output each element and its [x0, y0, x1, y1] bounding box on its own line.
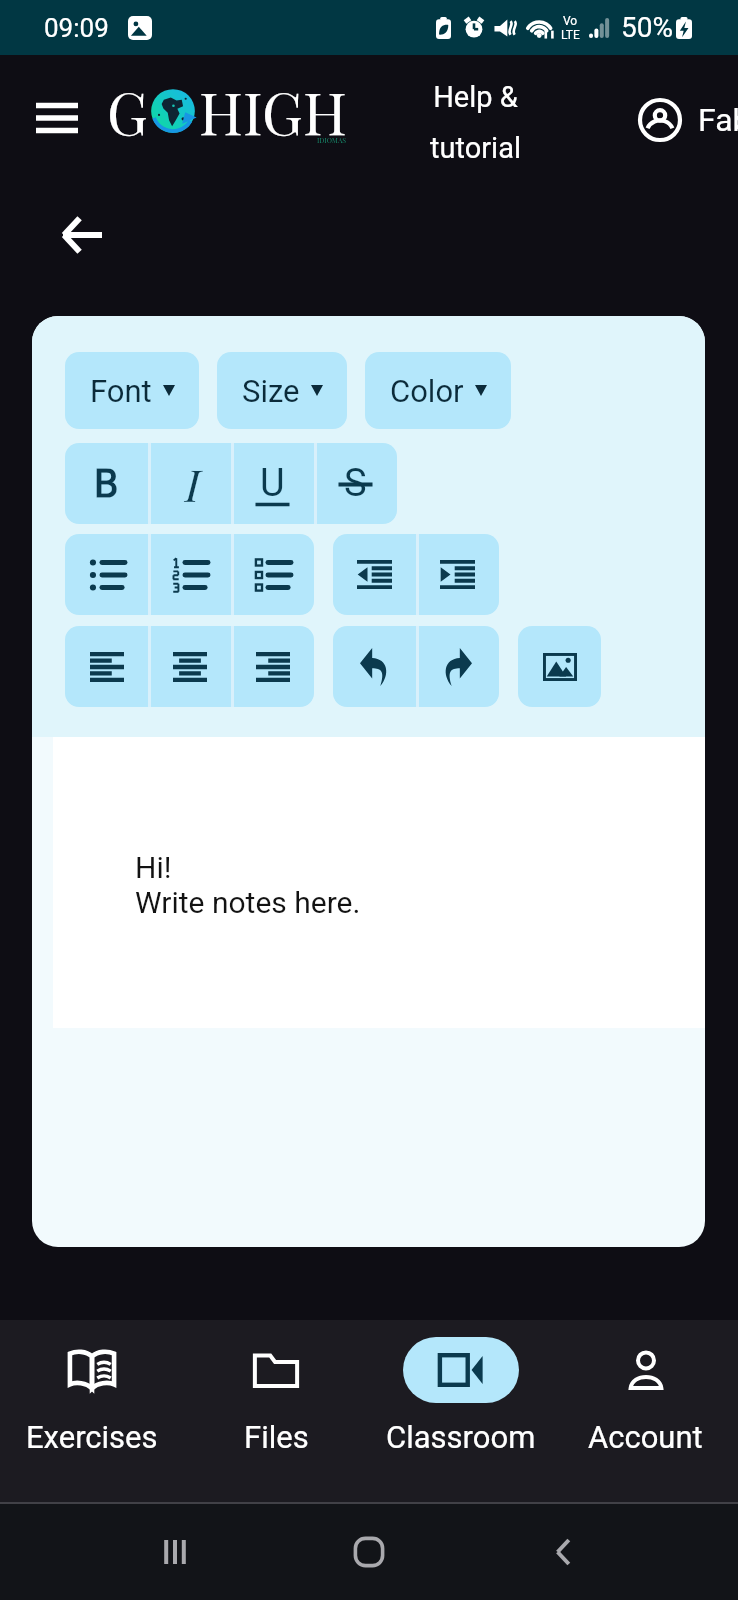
button[interactable]: Align [148, 626, 231, 707]
staticText: Classroom [386, 1419, 536, 1455]
button[interactable]: List style [148, 534, 231, 615]
button[interactable]: Indent [416, 534, 499, 615]
staticText: Font [90, 373, 152, 409]
staticText: Size [242, 373, 300, 409]
button[interactable]: Undo redo [416, 626, 499, 707]
button[interactable]: S [314, 443, 397, 524]
button[interactable]: Insert image [518, 626, 601, 707]
button[interactable]: Account [636, 96, 738, 144]
other: Account [636, 96, 684, 144]
button[interactable]: B [65, 443, 148, 524]
staticText: I [182, 454, 197, 513]
staticText: Files [244, 1419, 309, 1455]
button[interactable]: Back [36, 189, 128, 281]
staticText: Fab [698, 101, 738, 139]
staticText: Account [588, 1419, 703, 1455]
button[interactable]: Files [184, 1320, 368, 1502]
button[interactable]: Undo redo [333, 626, 416, 707]
staticText: LTE [561, 28, 580, 42]
button[interactable]: Menu [23, 84, 91, 152]
button[interactable]: Classroom [368, 1320, 553, 1502]
button[interactable]: Exercises [0, 1320, 184, 1502]
button[interactable]: I [148, 443, 231, 524]
staticText: 50% [621, 11, 673, 44]
staticText: Help & tutorial [430, 80, 521, 165]
button[interactable]: List style [231, 534, 314, 615]
staticText: Exercises [26, 1419, 158, 1455]
button[interactable]: Font [65, 352, 199, 429]
button[interactable]: Account [553, 1320, 738, 1502]
staticText: Color [390, 373, 464, 409]
button[interactable]: Align [231, 626, 314, 707]
button[interactable]: Help & tutorial [407, 67, 543, 177]
staticText: G [107, 72, 148, 149]
button[interactable]: Size [217, 352, 347, 429]
staticText: Hi! [135, 850, 172, 885]
staticText: B [94, 461, 119, 507]
staticText: U [260, 461, 285, 506]
button[interactable]: U [231, 443, 314, 524]
button[interactable]: Align [65, 626, 148, 707]
staticText: Write notes here. [135, 885, 361, 920]
button[interactable]: Color [365, 352, 511, 429]
staticText: S [344, 461, 367, 506]
staticText: HIGH [199, 72, 347, 149]
staticText: Vo [563, 14, 578, 28]
staticText: IDIOMAS [317, 135, 347, 144]
button[interactable]: List style [65, 534, 148, 615]
staticText: 09:09 [44, 13, 109, 43]
button[interactable]: Indent [333, 534, 416, 615]
